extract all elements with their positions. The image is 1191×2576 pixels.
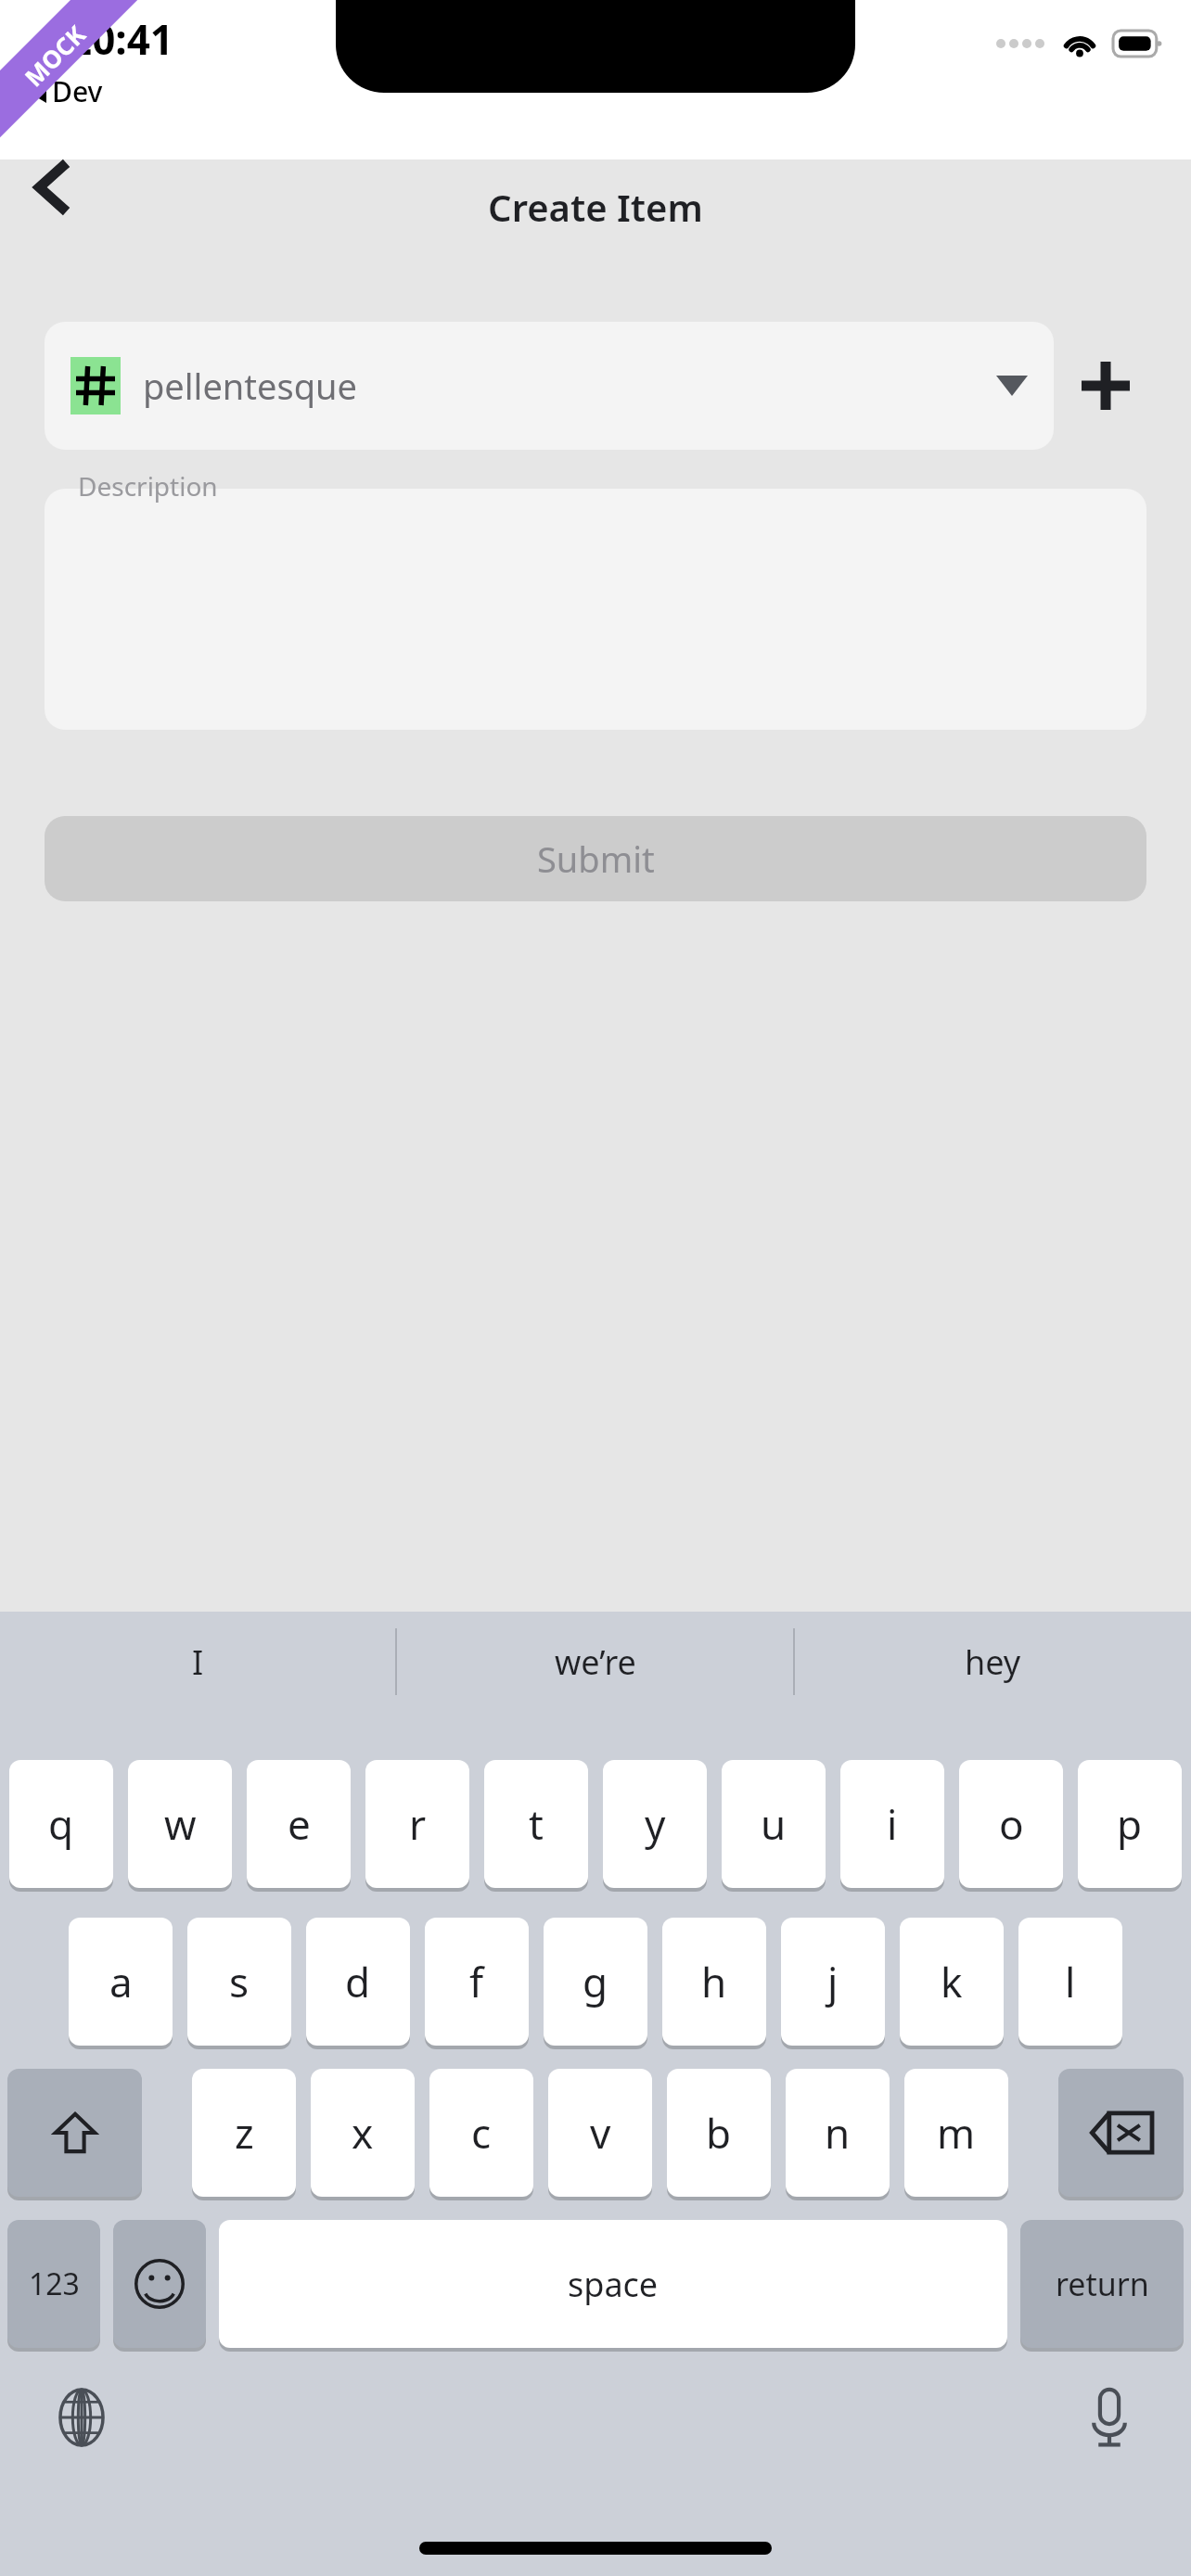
staticText: Description — [78, 468, 218, 504]
button[interactable]: Dictate — [1065, 2373, 1154, 2462]
button[interactable]: pellentesque — [45, 322, 1054, 450]
button[interactable]: Return — [1020, 2220, 1184, 2348]
staticText: o — [999, 1796, 1024, 1852]
staticText: a — [109, 1954, 133, 2009]
button[interactable]: c — [429, 2069, 533, 2197]
button[interactable]: f — [425, 1918, 529, 2046]
staticText: b — [706, 2105, 732, 2161]
button[interactable]: e — [247, 1760, 351, 1888]
button[interactable]: v — [548, 2069, 652, 2197]
button[interactable]: d — [306, 1918, 410, 2046]
button[interactable]: m — [904, 2069, 1008, 2197]
staticText: space — [568, 2262, 659, 2307]
button[interactable]: Backspace — [1058, 2069, 1184, 2197]
staticText: u — [761, 1796, 787, 1852]
staticText: f — [469, 1954, 484, 2009]
button[interactable]: s — [187, 1918, 291, 2046]
staticText: x — [352, 2105, 374, 2161]
button[interactable]: Numbers — [7, 2220, 100, 2348]
button[interactable]: k — [900, 1918, 1004, 2046]
staticText: n — [825, 2105, 851, 2161]
button[interactable]: we’re — [397, 1612, 793, 1712]
staticText: Dev — [52, 72, 103, 110]
button[interactable]: I — [0, 1612, 395, 1712]
staticText: z — [235, 2105, 254, 2161]
button[interactable]: w — [128, 1760, 232, 1888]
button[interactable]: p — [1078, 1760, 1182, 1888]
button[interactable]: q — [9, 1760, 113, 1888]
staticText: j — [827, 1954, 839, 2009]
staticText: MOCK — [17, 17, 92, 93]
staticText: y — [645, 1796, 666, 1852]
button[interactable]: Emoji — [113, 2220, 206, 2348]
button[interactable]: n — [786, 2069, 890, 2197]
staticText: s — [229, 1954, 250, 2009]
button[interactable]: Back — [0, 141, 102, 234]
button[interactable]: z — [192, 2069, 296, 2197]
staticText: i — [887, 1796, 898, 1852]
staticText: I — [192, 1639, 204, 1685]
button[interactable]: a — [69, 1918, 173, 2046]
button[interactable]: Shift — [7, 2069, 142, 2197]
button[interactable]: Submit — [45, 816, 1146, 901]
staticText: 20:41 — [69, 11, 174, 67]
button[interactable]: h — [662, 1918, 766, 2046]
button[interactable]: g — [544, 1918, 647, 2046]
staticText: 123 — [29, 2264, 80, 2304]
button[interactable]: Switch keyboard — [37, 2373, 126, 2462]
staticText: hey — [965, 1639, 1021, 1685]
staticText: k — [941, 1954, 963, 2009]
staticText: d — [345, 1954, 371, 2009]
button[interactable]: u — [722, 1760, 826, 1888]
button[interactable]: x — [311, 2069, 415, 2197]
button[interactable] — [45, 489, 1146, 730]
staticText: e — [288, 1796, 311, 1852]
button[interactable]: space — [219, 2220, 1007, 2348]
button[interactable]: r — [365, 1760, 469, 1888]
button[interactable]: l — [1018, 1918, 1122, 2046]
staticText: l — [1065, 1954, 1076, 2009]
staticText: return — [1056, 2263, 1149, 2305]
button[interactable]: Add — [1054, 322, 1158, 450]
staticText: pellentesque — [143, 362, 996, 410]
staticText: q — [48, 1796, 74, 1852]
button[interactable]: b — [667, 2069, 771, 2197]
staticText: h — [701, 1954, 727, 2009]
staticText: p — [1117, 1796, 1143, 1852]
staticText: v — [590, 2105, 611, 2161]
staticText: g — [583, 1954, 608, 2009]
staticText: r — [409, 1796, 427, 1852]
button[interactable]: hey — [795, 1612, 1191, 1712]
button[interactable]: y — [603, 1760, 707, 1888]
staticText: m — [937, 2105, 976, 2161]
staticText: t — [529, 1796, 544, 1852]
button[interactable]: i — [840, 1760, 944, 1888]
staticText: c — [471, 2105, 492, 2161]
staticText: w — [164, 1796, 197, 1852]
button[interactable]: j — [781, 1918, 885, 2046]
button[interactable]: o — [959, 1760, 1063, 1888]
staticText: Submit — [537, 835, 655, 883]
button[interactable]: t — [484, 1760, 588, 1888]
staticText: we’re — [555, 1639, 636, 1685]
staticText: Create Item — [0, 182, 1191, 232]
